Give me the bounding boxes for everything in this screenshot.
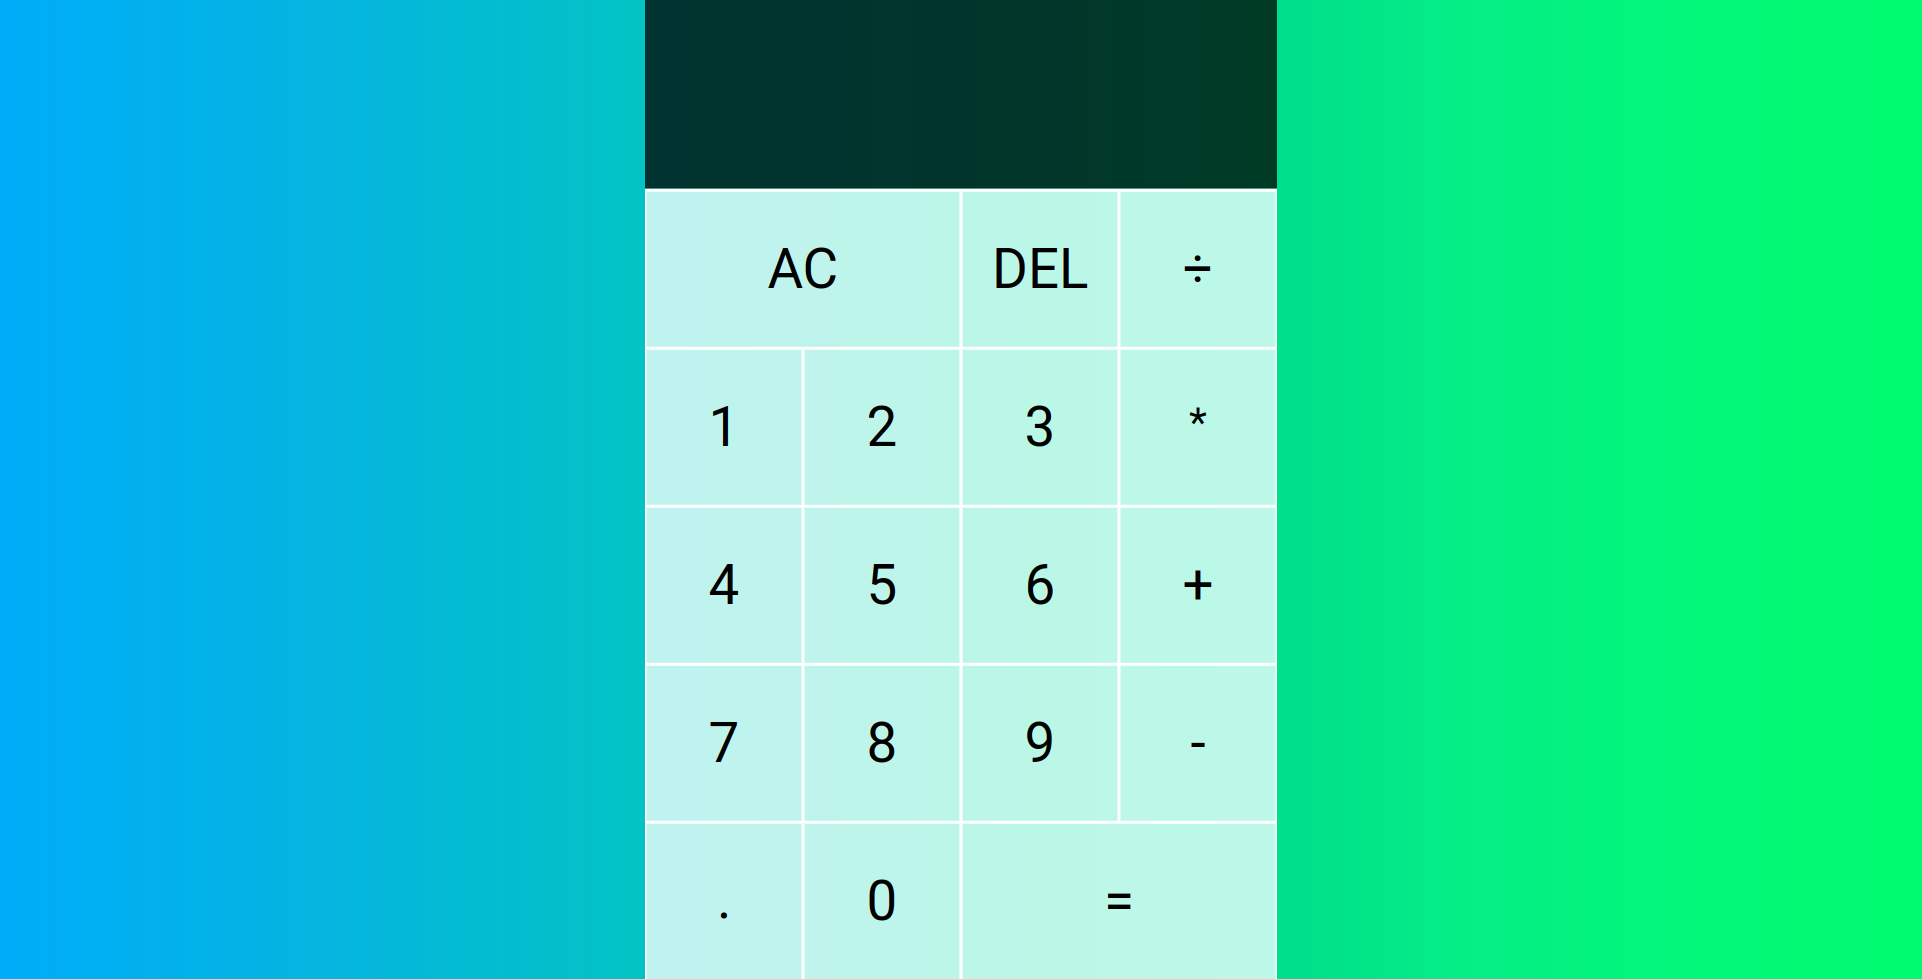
staticText: . xyxy=(717,867,731,931)
staticText: 9 xyxy=(1024,711,1055,775)
staticText: 2 xyxy=(866,395,897,459)
staticText: AC xyxy=(767,237,838,301)
staticText: ÷ xyxy=(1183,238,1213,299)
staticText: 3 xyxy=(1024,395,1055,459)
staticText: 1 xyxy=(708,395,739,459)
staticText: 6 xyxy=(1024,553,1055,617)
button[interactable]: Add xyxy=(1120,508,1275,663)
button[interactable]: 2 xyxy=(804,350,959,505)
button[interactable]: 5 xyxy=(804,508,959,663)
button[interactable]: Subtract xyxy=(1120,666,1275,821)
staticText: = xyxy=(1104,869,1134,933)
staticText: 5 xyxy=(866,553,897,617)
button[interactable]: 3 xyxy=(962,350,1117,505)
staticText: 4 xyxy=(708,553,739,617)
button[interactable]: 0 xyxy=(804,824,959,979)
button[interactable]: Divide xyxy=(1120,192,1275,347)
staticText: 8 xyxy=(866,711,897,775)
button[interactable]: 6 xyxy=(962,508,1117,663)
button[interactable]: 8 xyxy=(804,666,959,821)
staticText: + xyxy=(1182,553,1213,617)
button[interactable]: Multiply xyxy=(1120,350,1275,505)
staticText: - xyxy=(1190,711,1205,775)
button[interactable]: Equals xyxy=(962,824,1275,979)
button[interactable]: DEL xyxy=(962,192,1117,347)
button[interactable]: 1 xyxy=(646,350,801,505)
staticText: 0 xyxy=(866,869,897,933)
button[interactable]: 7 xyxy=(646,666,801,821)
staticText: DEL xyxy=(992,237,1088,301)
button[interactable]: Decimal point xyxy=(646,824,801,979)
button[interactable]: AC xyxy=(646,192,959,347)
button[interactable]: 4 xyxy=(646,508,801,663)
staticText: * xyxy=(1189,398,1207,447)
button[interactable]: 9 xyxy=(962,666,1117,821)
staticText: 7 xyxy=(708,711,739,775)
